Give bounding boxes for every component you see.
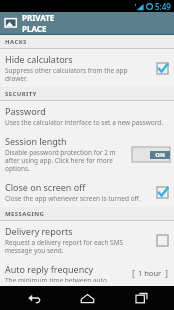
staticText: Close the app whenever screen is turned … [5, 194, 141, 203]
button[interactable]: Hide calculators [0, 49, 174, 87]
other: Private Place app icon [3, 15, 19, 31]
staticText: Uses the calculator interface to set a n… [5, 118, 164, 127]
button[interactable]: Password [0, 101, 174, 131]
staticText: Delivery reports [5, 225, 73, 237]
staticText: PRIVATE [22, 12, 55, 23]
button[interactable]: Checked [154, 60, 170, 76]
staticText: Session length [5, 135, 67, 147]
button[interactable]: Back [14, 286, 54, 310]
staticText: Password [5, 105, 46, 117]
button[interactable]: Private Place app icon [0, 12, 174, 34]
staticText: Disable password protection for 2 m afte… [5, 148, 128, 173]
staticText: SECURITY [5, 90, 37, 98]
staticText: HACKS [5, 38, 27, 46]
staticText: Request a delivery report for each SMS m… [5, 238, 150, 255]
staticText: 5:49 [155, 1, 171, 12]
staticText: MESSAGING [5, 210, 45, 218]
button[interactable]: Auto reply frequency [0, 259, 174, 286]
button[interactable]: Delivery reports [0, 221, 174, 259]
button[interactable]: Home [67, 286, 107, 310]
button[interactable]: Unchecked [154, 232, 170, 248]
button[interactable]: Recent apps [121, 286, 161, 310]
staticText: ON [155, 151, 165, 159]
button[interactable]: [ [130, 265, 170, 281]
staticText: Suppress other calculators from the app … [5, 66, 150, 83]
button[interactable]: Checked [154, 184, 170, 200]
button[interactable]: Session length [0, 131, 174, 177]
staticText: Hide calculators [5, 53, 73, 65]
button[interactable]: Switch on [132, 147, 170, 162]
button[interactable]: Close on screen off [0, 177, 174, 207]
staticText: The minimum time between auto replies to… [5, 276, 126, 282]
staticText: Auto reply frequency [5, 263, 94, 275]
staticText: [ [132, 267, 135, 279]
staticText: ] [165, 267, 168, 279]
staticText: PLACE [22, 23, 47, 34]
staticText: 1 hour [138, 268, 162, 278]
staticText: Close on screen off [5, 181, 86, 193]
